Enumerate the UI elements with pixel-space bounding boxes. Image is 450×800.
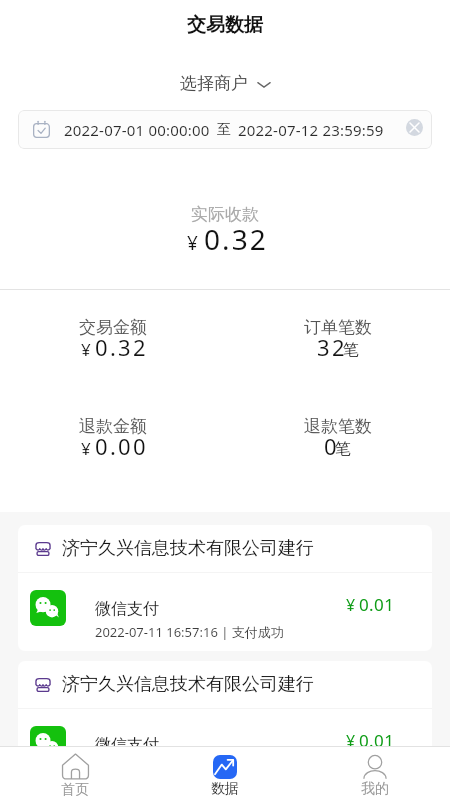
- staticText: 32: [317, 332, 347, 362]
- staticText: 微信支付: [95, 599, 159, 619]
- staticText: 0.32: [95, 332, 148, 362]
- staticText: 我的: [361, 780, 389, 798]
- button[interactable]: 2022-07-01 00:00:00: [18, 110, 432, 149]
- staticText: 0.01: [359, 593, 395, 616]
- staticText: ¥: [346, 730, 356, 752]
- staticText: ¥: [187, 230, 198, 256]
- staticText: ¥: [81, 437, 91, 460]
- staticText: 0.32: [204, 220, 268, 258]
- staticText: 首页: [61, 781, 89, 799]
- button[interactable]: 选择商户: [170, 68, 281, 99]
- staticText: 数据: [211, 780, 239, 798]
- staticText: 笔: [335, 439, 351, 459]
- staticText: 选择商户: [180, 73, 248, 94]
- staticText: 交易数据: [187, 13, 263, 37]
- staticText: 0: [324, 431, 339, 461]
- staticText: 0.00: [95, 431, 148, 461]
- staticText: 交易金额: [79, 317, 147, 338]
- staticText: 济宁久兴信息技术有限公司建行: [62, 673, 314, 696]
- button[interactable]: 济宁久兴信息技术有限公司建行: [18, 525, 432, 651]
- staticText: 退款笔数: [304, 416, 372, 437]
- button[interactable]: 首页: [0, 747, 150, 800]
- staticText: 济宁久兴信息技术有限公司建行: [62, 537, 314, 560]
- staticText: 2022-07-01 00:00:00: [64, 120, 210, 140]
- staticText: 至: [217, 121, 231, 139]
- staticText: ¥: [81, 338, 91, 361]
- staticText: 2022-07-12 23:59:59: [238, 120, 384, 140]
- staticText: 0.01: [359, 729, 395, 752]
- staticText: 退款金额: [79, 416, 147, 437]
- button[interactable]: 数据: [150, 747, 300, 800]
- staticText: 实际收款: [191, 204, 259, 225]
- staticText: 2022-07-11 16:57:16 | 支付成功: [95, 623, 284, 641]
- button[interactable]: 济宁久兴信息技术有限公司建行: [18, 661, 432, 787]
- staticText: 订单笔数: [304, 317, 372, 338]
- staticText: ¥: [346, 594, 356, 616]
- staticText: 笔: [343, 340, 359, 360]
- button[interactable]: 我的: [300, 747, 450, 800]
- staticText: 微信支付: [95, 735, 159, 755]
- button[interactable]: Clear date range: [406, 119, 423, 136]
- staticText: 2022-07-11 16:57:16 | 支付成功: [95, 759, 284, 777]
